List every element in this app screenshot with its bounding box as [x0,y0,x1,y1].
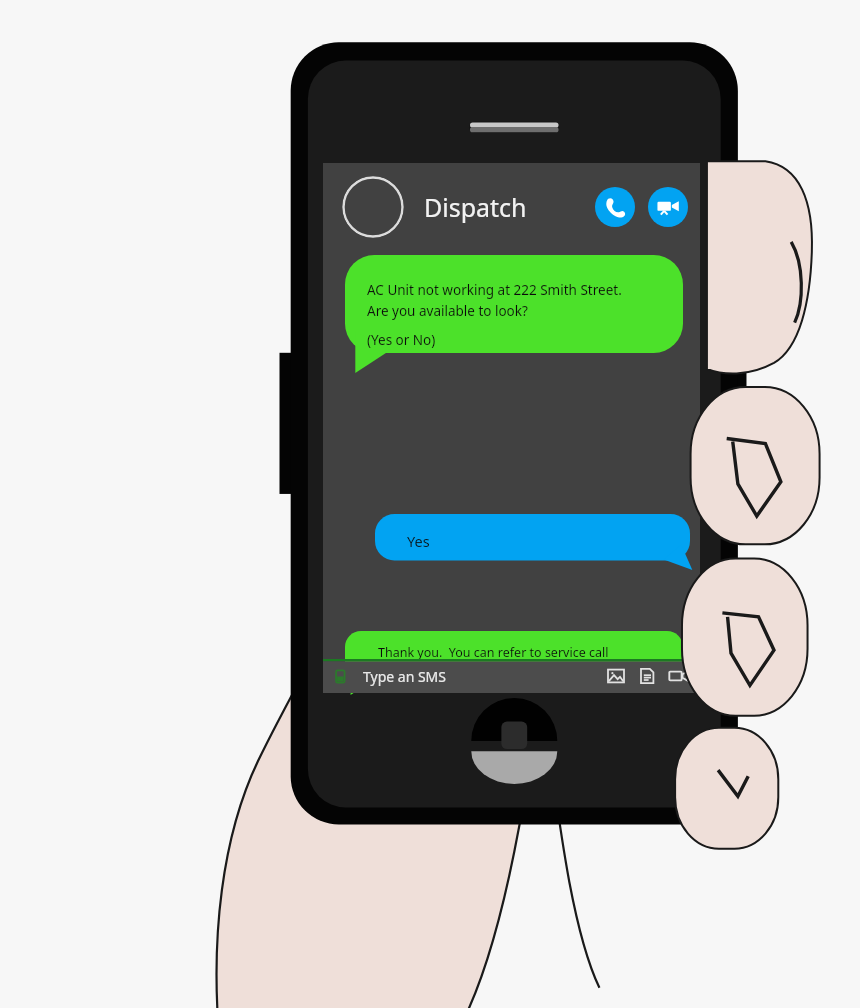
button[interactable]: Thank you. You can refer to service call [345,631,683,695]
staticText: Yes [407,531,430,551]
button[interactable]: Call [595,187,635,227]
button[interactable]: SIM card [332,668,349,685]
button[interactable]: Type an SMS [363,667,606,686]
button[interactable]: Yes [375,514,690,570]
staticText: Are you available to look? [367,302,528,320]
staticText: Thank you. You can refer to service call [378,644,609,661]
staticText: (Yes or No) [367,331,436,349]
staticText: AC Unit not working at 222 Smith Street. [367,281,622,299]
button[interactable]: Attach image [606,666,626,686]
button[interactable]: Video call [648,187,688,227]
staticText: Type an SMS [363,667,447,686]
staticText: LAC0000003. Click here to view in system [378,663,618,680]
button[interactable]: Attach video [668,665,690,687]
button[interactable]: Attach file [637,666,657,686]
staticText: Dispatch [424,190,527,224]
button[interactable]: AC Unit not working at 222 Smith Street. [345,255,683,373]
button[interactable]: Contact avatar [342,176,404,238]
